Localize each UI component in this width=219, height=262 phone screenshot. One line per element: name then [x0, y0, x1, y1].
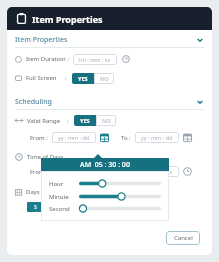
staticText: hh : mm : ss [58, 168, 90, 175]
staticText: To : [121, 134, 131, 142]
button[interactable]: hh : mm : ss [73, 54, 117, 65]
button[interactable]: Item Properties [15, 35, 204, 45]
staticText: Item Properties [15, 35, 68, 45]
staticText: Second [49, 205, 70, 213]
button[interactable]: yy : mm : dd [52, 132, 96, 143]
staticText: Cancel [174, 234, 193, 242]
button[interactable]: NO [96, 115, 116, 126]
staticText: hh : mm : ss [79, 56, 111, 63]
staticText: yy : mm : dd [141, 134, 173, 141]
staticText: Valid Range [27, 117, 61, 125]
staticText: Time of Days [27, 153, 64, 161]
staticText: NO [102, 117, 111, 124]
button[interactable]: Scheduling [15, 97, 204, 107]
button[interactable]: Hour [49, 178, 161, 189]
button[interactable]: YES [74, 115, 96, 126]
button[interactable]: yy : mm : dd [135, 132, 179, 143]
staticText: hh : mm : ss [141, 168, 173, 175]
other: Collapse section [196, 36, 204, 44]
button[interactable]: S [27, 202, 43, 212]
staticText: : [67, 117, 69, 125]
button[interactable]: NO [94, 73, 114, 84]
staticText: To : [121, 168, 131, 176]
button[interactable]: Second [49, 203, 161, 214]
staticText: Scheduling [15, 97, 52, 107]
staticText: Days [26, 188, 40, 196]
staticText: : [65, 74, 67, 82]
staticText: NO [100, 75, 109, 82]
staticText: AM 05 : 30 : 00 [80, 160, 130, 170]
staticText: S [34, 204, 37, 211]
other: Collapse section [196, 98, 204, 106]
staticText: Hour [49, 180, 64, 188]
staticText: Minute [49, 193, 69, 201]
staticText: YES [78, 75, 88, 82]
staticText: Item Duration : [26, 55, 69, 63]
button[interactable]: hh : mm : ss [52, 166, 96, 177]
button[interactable]: Cancel [166, 231, 200, 245]
staticText: From : [30, 168, 48, 176]
button[interactable]: hh : mm : ss [135, 166, 179, 177]
button[interactable]: AM 05 : 30 : 00 [41, 158, 169, 171]
button[interactable]: Minute [49, 191, 161, 202]
button[interactable]: YES [72, 73, 94, 84]
staticText: Item Properties [32, 13, 103, 25]
staticText: Full Screen [26, 74, 57, 82]
staticText: YES [80, 117, 90, 124]
staticText: From : [30, 134, 48, 142]
staticText: yy : mm : dd [58, 134, 90, 141]
